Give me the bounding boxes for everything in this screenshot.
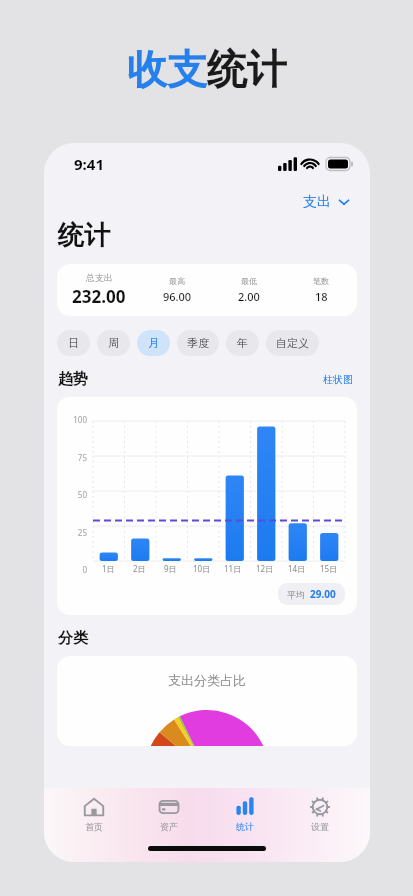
staticText: 收支: [127, 44, 207, 94]
staticText: 96.00: [163, 289, 192, 304]
button[interactable]: 季度: [177, 330, 219, 356]
staticText: 笔数: [313, 276, 329, 286]
button[interactable]: 月: [137, 330, 170, 356]
staticText: 统计: [58, 219, 110, 252]
staticText: 29.00: [310, 587, 336, 601]
staticText: 12日: [256, 563, 274, 574]
staticText: 周: [108, 336, 119, 350]
staticText: 75: [65, 452, 87, 463]
staticText: 11日: [224, 563, 242, 574]
button[interactable]: 统计: [220, 794, 270, 834]
staticText: 平均: [287, 589, 305, 600]
button[interactable]: 周: [97, 330, 130, 356]
staticText: 支出分类占比: [168, 672, 246, 688]
staticText: 年: [237, 336, 248, 350]
staticText: 分类: [58, 629, 88, 648]
staticText: 15日: [320, 563, 338, 574]
staticText: 支出: [303, 193, 331, 211]
button[interactable]: 柱状图: [320, 371, 356, 388]
staticText: 2.00: [238, 289, 260, 304]
staticText: 2日: [133, 563, 146, 574]
staticText: 14日: [288, 563, 306, 574]
staticText: 232.00: [72, 285, 126, 308]
staticText: 日: [68, 336, 79, 350]
button[interactable]: 日: [57, 330, 90, 356]
staticText: 50: [65, 489, 87, 500]
staticText: 趋势: [58, 370, 88, 389]
button[interactable]: 首页: [69, 794, 119, 834]
button[interactable]: 平均: [278, 583, 345, 605]
staticText: 设置: [311, 821, 329, 832]
staticText: 柱状图: [323, 373, 353, 386]
staticText: 100: [65, 414, 87, 425]
staticText: 月: [148, 336, 159, 350]
staticText: 首页: [85, 821, 103, 832]
staticText: 18: [315, 289, 328, 304]
staticText: 总支出: [86, 272, 113, 283]
staticText: 自定义: [276, 336, 309, 350]
button[interactable]: 资产: [144, 794, 194, 834]
staticText: 统计: [236, 821, 254, 832]
button[interactable]: 设置: [295, 794, 345, 834]
button[interactable]: 支出: [299, 191, 354, 213]
button[interactable]: 年: [226, 330, 259, 356]
button[interactable]: 总支出: [57, 264, 357, 316]
staticText: 9:41: [74, 154, 104, 174]
staticText: 1日: [102, 563, 115, 574]
staticText: 最低: [241, 276, 257, 286]
staticText: 季度: [187, 336, 209, 350]
staticText: 25: [65, 527, 87, 538]
staticText: 9日: [164, 563, 177, 574]
staticText: 最高: [169, 276, 185, 286]
staticText: 10日: [193, 563, 211, 574]
staticText: 资产: [160, 821, 178, 832]
button[interactable]: 自定义: [266, 330, 319, 356]
staticText: 统计: [207, 44, 287, 94]
staticText: 0: [65, 564, 87, 575]
